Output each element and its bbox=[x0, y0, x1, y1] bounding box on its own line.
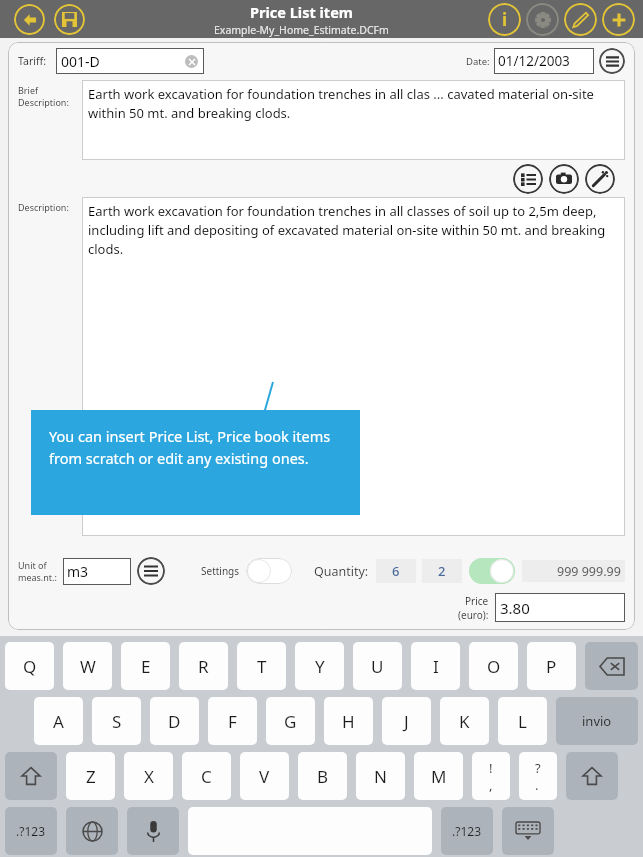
button[interactable]: D bbox=[150, 697, 199, 745]
button[interactable]: Toggle off bbox=[246, 558, 292, 584]
staticText: I bbox=[433, 655, 439, 678]
staticText: Settings bbox=[201, 564, 240, 578]
staticText: A bbox=[53, 710, 64, 733]
staticText: 2 bbox=[438, 562, 446, 580]
button[interactable]: F bbox=[208, 697, 257, 745]
staticText: Earth work excavation for foundation tre… bbox=[88, 202, 619, 258]
button[interactable]: R bbox=[179, 642, 228, 690]
button[interactable]: .?123 bbox=[441, 807, 493, 855]
staticText: Tariff: bbox=[18, 54, 46, 68]
staticText: Price bbox=[465, 594, 489, 608]
staticText: 6 bbox=[392, 562, 400, 580]
button[interactable]: Q bbox=[5, 642, 54, 690]
button[interactable]: Z bbox=[66, 752, 115, 800]
staticText: B bbox=[317, 765, 329, 788]
button[interactable]: 3.80 bbox=[495, 593, 625, 622]
button[interactable]: Backspace bbox=[585, 642, 638, 690]
staticText: C bbox=[201, 765, 212, 788]
button[interactable]: K bbox=[440, 697, 489, 745]
button[interactable]: Settings bbox=[526, 3, 559, 36]
staticText: M bbox=[431, 765, 447, 788]
staticText: m3 bbox=[67, 562, 89, 581]
staticText: Y bbox=[315, 655, 325, 678]
staticText: Q bbox=[23, 655, 37, 678]
button[interactable]: Earth work excavation for foundation tre… bbox=[82, 197, 625, 536]
button[interactable]: 2 bbox=[422, 559, 462, 583]
staticText: K bbox=[459, 710, 470, 733]
button[interactable]: ! , bbox=[472, 752, 510, 800]
staticText: F bbox=[228, 710, 237, 733]
button[interactable]: Date options bbox=[599, 48, 625, 74]
staticText: ! , bbox=[489, 759, 493, 794]
button[interactable]: Add bbox=[602, 3, 635, 36]
staticText: N bbox=[374, 765, 387, 788]
button[interactable]: E bbox=[121, 642, 170, 690]
button[interactable]: You can insert Price List, Price book it… bbox=[31, 410, 360, 515]
staticText: ? . bbox=[535, 759, 541, 794]
button[interactable]: Language bbox=[66, 807, 118, 855]
button[interactable]: O bbox=[469, 642, 518, 690]
button[interactable]: P bbox=[527, 642, 576, 690]
button[interactable]: V bbox=[240, 752, 289, 800]
staticText: D bbox=[168, 710, 181, 733]
button[interactable]: S bbox=[92, 697, 141, 745]
staticText: Date: bbox=[466, 55, 490, 68]
button[interactable]: Edit bbox=[564, 3, 597, 36]
button[interactable]: List bbox=[513, 164, 543, 194]
staticText: Description: bbox=[18, 96, 69, 108]
button[interactable]: Shift bbox=[5, 752, 57, 800]
staticText: W bbox=[80, 655, 96, 678]
button[interactable]: 999 999.99 bbox=[522, 560, 625, 582]
button[interactable]: 6 bbox=[376, 559, 416, 583]
button[interactable]: 01/12/2003 bbox=[494, 48, 594, 74]
button[interactable]: M bbox=[414, 752, 463, 800]
staticText: S bbox=[112, 710, 122, 733]
staticText: Earth work excavation for foundation tre… bbox=[88, 85, 619, 122]
staticText: V bbox=[259, 765, 270, 788]
button[interactable]: G bbox=[266, 697, 315, 745]
staticText: Description: bbox=[18, 201, 69, 213]
button[interactable]: Clear bbox=[185, 55, 198, 68]
button[interactable]: Unit options bbox=[137, 557, 165, 585]
button[interactable]: C bbox=[182, 752, 231, 800]
button[interactable]: T bbox=[237, 642, 286, 690]
staticText: X bbox=[144, 765, 154, 788]
staticText: P bbox=[546, 655, 557, 678]
button[interactable]: J bbox=[382, 697, 431, 745]
button[interactable]: B bbox=[298, 752, 347, 800]
staticText: J bbox=[404, 710, 409, 733]
button[interactable]: Voice input bbox=[127, 807, 179, 855]
staticText: T bbox=[257, 655, 267, 678]
button[interactable]: L bbox=[498, 697, 547, 745]
button[interactable]: Y bbox=[295, 642, 344, 690]
button[interactable]: N bbox=[356, 752, 405, 800]
button[interactable]: ? . bbox=[519, 752, 557, 800]
button[interactable]: Toggle on bbox=[469, 558, 515, 584]
button[interactable]: H bbox=[324, 697, 373, 745]
staticText: .?123 bbox=[16, 823, 46, 839]
button[interactable]: Magic bbox=[585, 164, 615, 194]
staticText: meas.nt.: bbox=[18, 571, 57, 583]
button[interactable]: .?123 bbox=[5, 807, 57, 855]
button[interactable]: I bbox=[411, 642, 460, 690]
staticText: Quantity: bbox=[314, 563, 369, 580]
button[interactable]: Save bbox=[54, 4, 85, 35]
staticText: 999 999.99 bbox=[557, 563, 621, 580]
button[interactable]: invio bbox=[556, 697, 638, 745]
button[interactable]: U bbox=[353, 642, 402, 690]
button[interactable]: Camera bbox=[549, 164, 579, 194]
button[interactable]: A bbox=[34, 697, 83, 745]
button[interactable]: X bbox=[124, 752, 173, 800]
button[interactable]: m3 bbox=[63, 558, 131, 585]
staticText: 001-D bbox=[61, 52, 100, 71]
button[interactable]: 001-D bbox=[56, 48, 204, 74]
staticText: Unit of bbox=[18, 559, 47, 571]
button[interactable]: W bbox=[63, 642, 112, 690]
button[interactable]: Earth work excavation for foundation tre… bbox=[82, 80, 625, 160]
staticText: .?123 bbox=[452, 823, 482, 839]
button[interactable]: Back bbox=[14, 4, 45, 35]
button[interactable]: Hide keyboard bbox=[502, 807, 554, 855]
button[interactable]: Shift bbox=[566, 752, 618, 800]
button[interactable]: Info bbox=[488, 3, 521, 36]
